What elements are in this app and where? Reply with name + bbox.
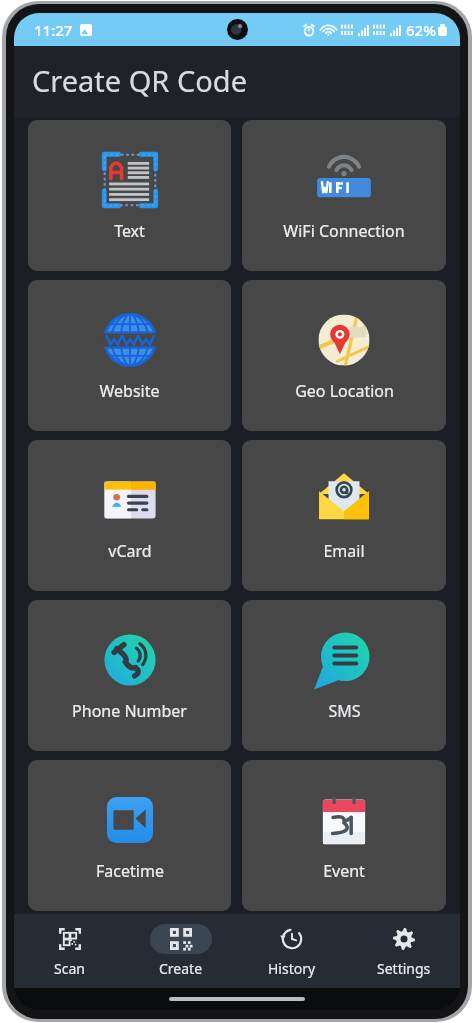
staticText: Geo Location	[295, 380, 394, 402]
button[interactable]: SMS	[242, 600, 446, 751]
button[interactable]: Scan	[14, 914, 125, 988]
button[interactable]: Event	[242, 760, 446, 911]
other: Scan	[59, 928, 81, 950]
staticText: Event	[323, 860, 365, 882]
button[interactable]: vCard	[28, 440, 231, 591]
button[interactable]: Facetime	[28, 760, 231, 911]
staticText: SMS	[328, 700, 361, 722]
other: History	[281, 928, 303, 950]
button[interactable]: Email	[242, 440, 446, 591]
staticText: 62%	[406, 20, 436, 40]
staticText: WiFi Connection	[283, 220, 405, 242]
button[interactable]: Settings	[348, 914, 460, 988]
staticText: vCard	[108, 540, 152, 562]
staticText: 11:27	[34, 20, 73, 40]
staticText: Create	[159, 959, 203, 978]
other: Settings	[393, 928, 415, 950]
button[interactable]: Geo Location	[242, 280, 446, 431]
staticText: Website	[99, 380, 160, 402]
staticText: Phone Number	[72, 700, 187, 722]
button[interactable]: Phone Number	[28, 600, 231, 751]
button[interactable]: Website	[28, 280, 231, 431]
staticText: History	[268, 959, 316, 978]
staticText: Create QR Code	[32, 61, 248, 100]
staticText: Settings	[377, 959, 431, 978]
button[interactable]: History	[236, 914, 348, 988]
button[interactable]: Text	[28, 120, 231, 271]
staticText: Text	[114, 220, 145, 242]
staticText: Email	[323, 540, 365, 562]
staticText: Facetime	[96, 860, 164, 882]
other: Create	[170, 928, 192, 950]
staticText: Scan	[54, 959, 85, 978]
button[interactable]: Create	[125, 914, 236, 988]
button[interactable]: WiFi Connection	[242, 120, 446, 271]
